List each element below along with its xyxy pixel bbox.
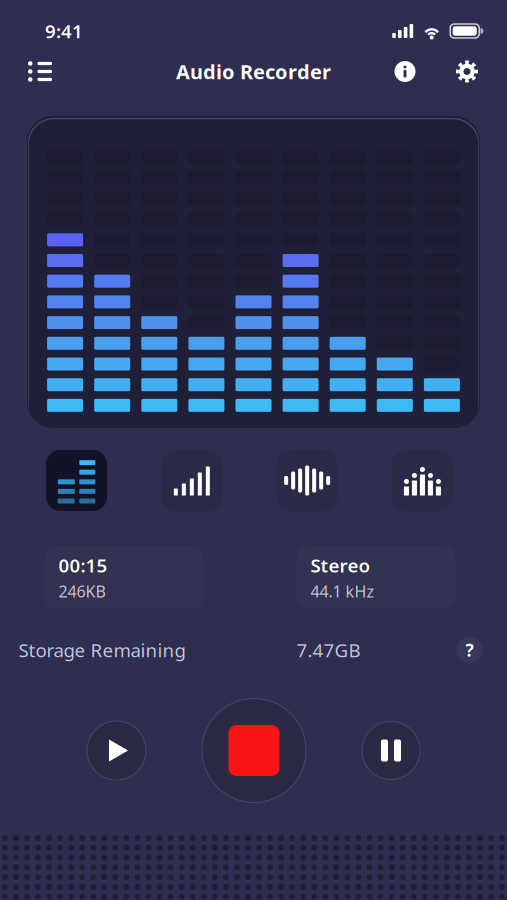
staticText: Audio Recorder [176, 58, 331, 85]
staticText: 44.1 kHz [310, 581, 374, 602]
button[interactable]: Waveform view [277, 450, 338, 511]
button[interactable]: Dots view [392, 450, 453, 511]
button[interactable]: Info [386, 52, 424, 90]
button[interactable]: Menu [21, 52, 59, 90]
staticText: Stereo [310, 553, 370, 578]
staticText: Storage Remaining [18, 638, 185, 662]
button[interactable]: Stop recording [200, 697, 307, 804]
button[interactable]: Bars view [161, 450, 222, 511]
staticText: 9:41 [45, 19, 83, 43]
staticText: 7.47GB [296, 638, 360, 662]
button[interactable]: Help [456, 637, 482, 663]
staticText: 246KB [58, 581, 105, 602]
button[interactable]: Pause [360, 720, 421, 781]
button[interactable]: Play [85, 719, 147, 781]
staticText: ? [465, 638, 473, 661]
button[interactable]: Equalizer view [46, 450, 107, 511]
staticText: 00:15 [58, 553, 107, 578]
button[interactable]: Settings [448, 52, 486, 90]
